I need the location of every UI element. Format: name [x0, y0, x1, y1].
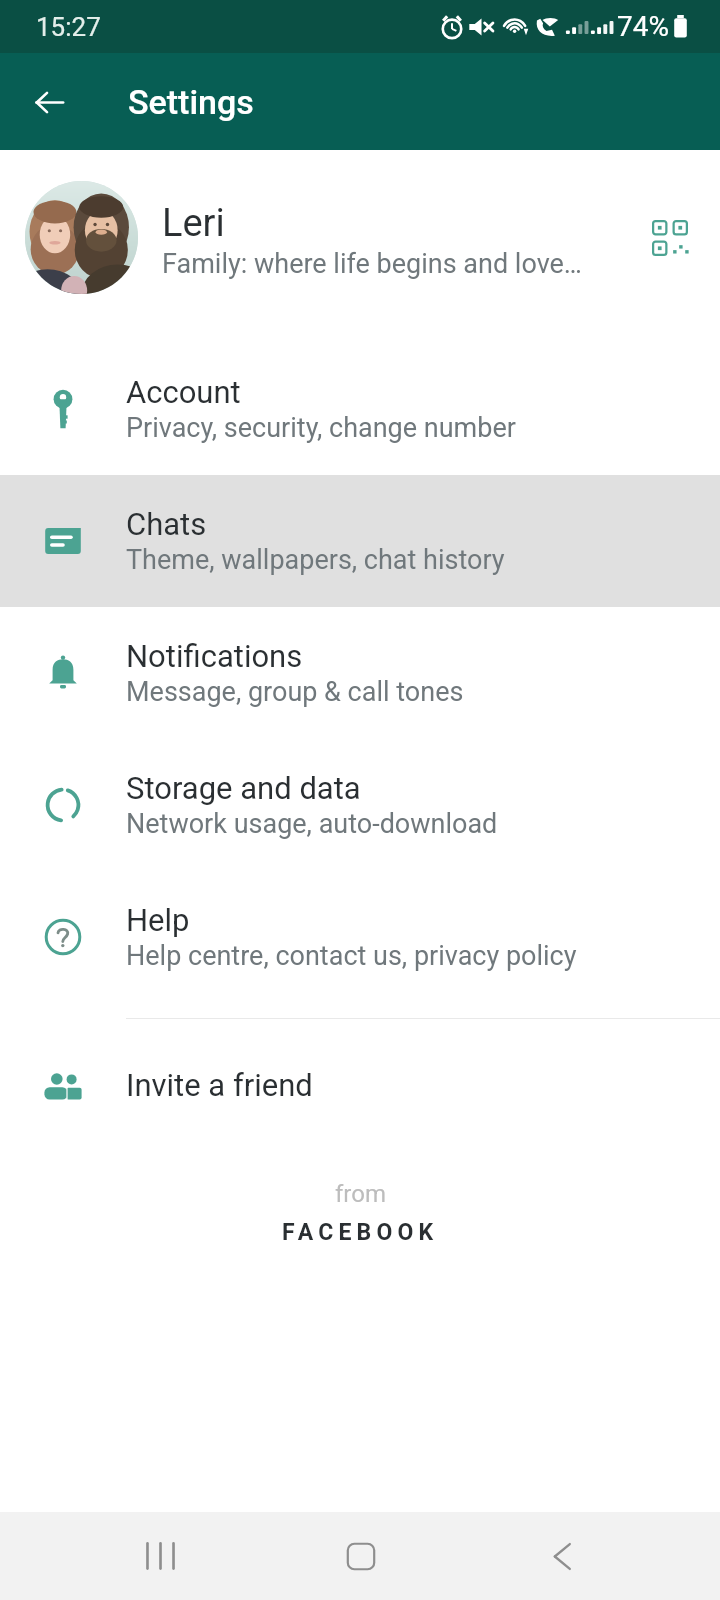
staticText: 74% — [617, 10, 669, 43]
staticText: Chats — [126, 506, 207, 542]
staticText: Settings — [128, 82, 254, 122]
staticText: Storage and data — [126, 770, 361, 806]
button[interactable]: Notifications — [0, 607, 720, 739]
staticText: from — [335, 1180, 386, 1208]
button[interactable]: Back — [512, 1512, 612, 1600]
button[interactable]: Home — [311, 1512, 411, 1600]
button[interactable]: QR code — [639, 207, 701, 269]
staticText: Help — [126, 902, 190, 938]
button[interactable]: Leri — [0, 150, 720, 324]
button[interactable]: Chats — [0, 475, 720, 607]
staticText: Family: where life begins and love… — [162, 248, 582, 280]
button[interactable]: Help — [0, 871, 720, 1003]
button[interactable]: Back — [20, 73, 78, 131]
staticText: 15:27 — [36, 12, 101, 42]
staticText: Help centre, contact us, privacy policy — [126, 940, 577, 972]
button[interactable]: Invite a friend — [0, 1019, 720, 1151]
button[interactable]: Storage and data — [0, 739, 720, 871]
staticText: Leri — [162, 201, 225, 246]
staticText: FACEBOOK — [282, 1219, 439, 1246]
staticText: Message, group & call tones — [126, 676, 464, 708]
staticText: Account — [126, 374, 241, 410]
staticText: Network usage, auto-download — [126, 808, 498, 840]
staticText: Notifications — [126, 638, 303, 674]
staticText: Privacy, security, change number — [126, 412, 516, 444]
staticText: Invite a friend — [126, 1067, 313, 1103]
button[interactable]: Recent apps — [110, 1512, 210, 1600]
button[interactable]: Account — [0, 343, 720, 475]
staticText: Theme, wallpapers, chat history — [126, 544, 505, 576]
